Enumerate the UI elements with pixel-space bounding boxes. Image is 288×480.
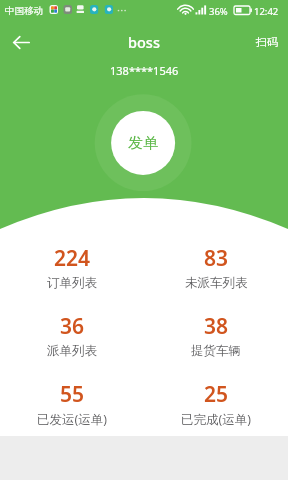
button[interactable]: 25 [144,380,288,448]
button[interactable]: 发单 [111,111,175,175]
staticText: 38 [204,312,229,341]
staticText: 36 [60,312,85,341]
staticText: 中国移动 [5,5,43,17]
staticText: 138****1546 [110,63,179,78]
staticText: 25 [204,380,229,409]
button[interactable]: 83 [144,244,288,312]
staticText: 55 [60,380,85,409]
staticText: 发单 [128,134,158,153]
staticText: 83 [204,244,229,273]
staticText: 未派车列表 [185,275,248,291]
staticText: boss [128,32,160,52]
staticText: 已发运(运单) [37,411,108,428]
button[interactable]: 36 [0,312,144,380]
button[interactable]: Back [0,21,42,63]
staticText: 已完成(运单) [181,411,252,428]
staticText: 224 [54,244,91,273]
button[interactable]: 224 [0,244,144,312]
button[interactable]: 38 [144,312,288,380]
staticText: 36% [209,5,228,18]
staticText: 12:42 [254,5,279,18]
staticText: 派单列表 [47,343,97,359]
button[interactable]: 扫码 [246,21,288,63]
button[interactable]: 55 [0,380,144,448]
staticText: 订单列表 [47,275,97,291]
staticText: 提货车辆 [191,343,241,359]
staticText: 扫码 [256,35,278,49]
